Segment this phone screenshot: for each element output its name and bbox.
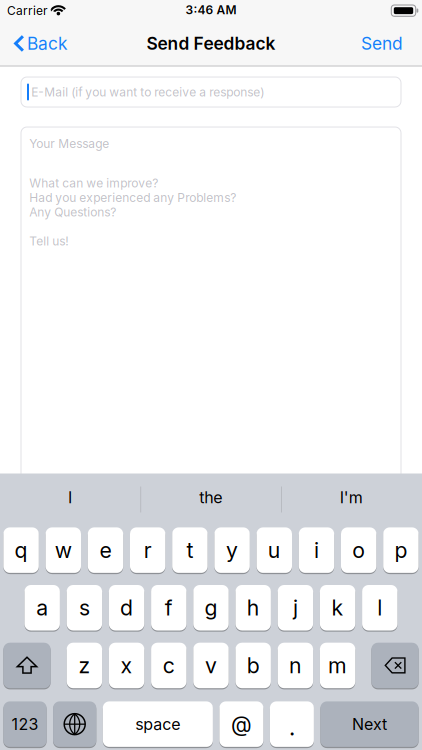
button[interactable]: p: [383, 527, 419, 573]
button[interactable]: d: [109, 585, 144, 630]
staticText: a: [36, 595, 48, 620]
button[interactable]: r: [130, 527, 165, 573]
staticText: @: [231, 712, 252, 737]
staticText: n: [289, 653, 302, 678]
staticText: Back: [27, 33, 68, 54]
button[interactable]: I'm: [281, 473, 421, 521]
staticText: k: [332, 595, 344, 620]
button[interactable]: x: [109, 643, 144, 688]
button[interactable]: Send: [361, 25, 403, 62]
staticText: i: [314, 538, 319, 563]
staticText: E-Mail (if you want to receive a respons…: [31, 85, 264, 99]
staticText: m: [328, 653, 347, 678]
staticText: space: [135, 715, 180, 734]
button[interactable]: w: [46, 527, 81, 573]
staticText: l: [377, 595, 382, 620]
button[interactable]: e: [88, 527, 123, 573]
staticText: Send: [361, 33, 403, 54]
button[interactable]: a: [24, 585, 60, 630]
staticText: q: [15, 538, 28, 563]
button[interactable]: z: [67, 643, 102, 688]
button[interactable]: Numbers: [3, 701, 47, 747]
staticText: What can we improve?: [29, 176, 158, 190]
staticText: d: [120, 595, 133, 620]
staticText: j: [293, 595, 298, 620]
staticText: u: [268, 538, 281, 563]
staticText: I: [68, 488, 72, 507]
button[interactable]: Space: [103, 701, 213, 747]
button[interactable]: Next keyboard: [53, 701, 96, 747]
button[interactable]: k: [320, 585, 355, 630]
button[interactable]: n: [278, 643, 313, 688]
button[interactable]: I: [0, 473, 140, 521]
staticText: v: [205, 653, 217, 678]
button[interactable]: Back: [14, 25, 68, 62]
staticText: Send Feedback: [146, 33, 275, 54]
staticText: c: [163, 653, 175, 678]
staticText: the: [199, 488, 222, 507]
button[interactable]: y: [214, 527, 250, 573]
staticText: y: [226, 538, 238, 563]
staticText: g: [204, 595, 217, 620]
button[interactable]: j: [278, 585, 313, 630]
staticText: w: [55, 538, 72, 563]
staticText: Any Questions?: [29, 205, 116, 219]
staticText: I'm: [340, 488, 363, 507]
button[interactable]: u: [257, 527, 292, 573]
staticText: r: [144, 538, 152, 563]
staticText: e: [99, 538, 111, 563]
button[interactable]: o: [341, 527, 376, 573]
staticText: 123: [11, 715, 38, 734]
button[interactable]: q: [3, 527, 39, 573]
button[interactable]: f: [151, 585, 186, 630]
button[interactable]: E-Mail (if you want to receive a respons…: [21, 77, 401, 107]
staticText: .: [289, 714, 295, 740]
button[interactable]: Your Message: [21, 127, 401, 481]
button[interactable]: Next: [320, 701, 419, 747]
button[interactable]: t: [172, 527, 208, 573]
button[interactable]: the: [141, 473, 281, 521]
button[interactable]: c: [151, 643, 186, 688]
staticText: z: [78, 653, 90, 678]
staticText: Your Message: [29, 137, 109, 151]
button[interactable]: s: [67, 585, 102, 630]
button[interactable]: Delete: [371, 643, 419, 688]
button[interactable]: h: [235, 585, 271, 630]
staticText: b: [247, 653, 260, 678]
staticText: h: [247, 595, 260, 620]
staticText: f: [165, 595, 173, 620]
button[interactable]: v: [193, 643, 229, 688]
staticText: Had you experienced any Problems?: [29, 190, 236, 205]
staticText: o: [352, 538, 365, 563]
button[interactable]: g: [193, 585, 229, 630]
staticText: Next: [352, 715, 387, 734]
staticText: Carrier: [7, 4, 48, 18]
button[interactable]: l: [362, 585, 397, 630]
button[interactable]: b: [235, 643, 271, 688]
staticText: Tell us!: [29, 234, 68, 248]
button[interactable]: Shift: [3, 643, 51, 688]
staticText: s: [79, 595, 90, 620]
button[interactable]: i: [299, 527, 334, 573]
staticText: x: [121, 653, 133, 678]
staticText: p: [394, 538, 407, 563]
button[interactable]: @: [219, 701, 263, 747]
staticText: t: [186, 538, 193, 563]
button[interactable]: .: [270, 701, 314, 747]
staticText: 3:46 AM: [185, 3, 236, 17]
button[interactable]: m: [320, 643, 355, 688]
